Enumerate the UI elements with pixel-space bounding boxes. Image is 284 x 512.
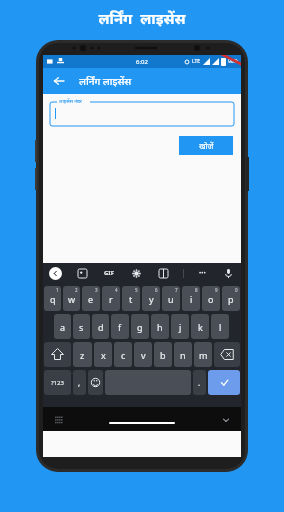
button[interactable]: z	[73, 342, 92, 367]
staticText: 5	[135, 287, 138, 293]
staticText: 2	[75, 287, 78, 293]
button[interactable]: Translate	[156, 266, 170, 280]
staticText: u	[168, 293, 174, 305]
staticText: q	[50, 293, 56, 305]
button[interactable]: e	[82, 286, 100, 311]
staticText: 0	[235, 287, 238, 293]
button[interactable]: n	[174, 342, 192, 367]
button[interactable]: b	[154, 342, 172, 367]
staticText: लर्निंग लाइसेंस	[98, 8, 186, 28]
button[interactable]: i	[182, 286, 200, 311]
staticText: x	[101, 349, 106, 361]
staticText: d	[98, 321, 104, 333]
staticText: r	[109, 293, 113, 305]
staticText: c	[121, 349, 126, 361]
button[interactable]: लाइसेंस नंबर	[50, 102, 234, 126]
staticText: z	[80, 349, 85, 361]
staticText: 1	[56, 287, 59, 293]
button[interactable]: f	[111, 314, 129, 339]
staticText: y	[149, 293, 154, 305]
button[interactable]: o	[202, 286, 220, 311]
button[interactable]: a	[54, 314, 71, 339]
button[interactable]: Stickers	[75, 266, 89, 280]
button[interactable]: j	[171, 314, 189, 339]
button[interactable]: d	[92, 314, 109, 339]
staticText: g	[137, 321, 143, 333]
button[interactable]: Voice input	[221, 266, 235, 280]
staticText: ,	[78, 377, 81, 388]
button[interactable]: l	[211, 314, 229, 339]
button[interactable]: More	[197, 267, 208, 279]
button[interactable]: r	[102, 286, 120, 311]
button[interactable]: Backspace	[214, 342, 240, 367]
staticText: n	[180, 349, 186, 361]
staticText: w	[68, 293, 76, 305]
staticText: 7	[175, 287, 178, 293]
button[interactable]: q	[44, 286, 61, 311]
staticText: i	[190, 293, 193, 305]
staticText: k	[198, 321, 203, 333]
button[interactable]: c	[114, 342, 132, 367]
staticText: GIF	[104, 269, 114, 277]
button[interactable]: s	[73, 314, 90, 339]
staticText: f	[118, 321, 122, 333]
button[interactable]: p	[222, 286, 240, 311]
staticText: .	[198, 377, 201, 388]
button[interactable]: Switch keyboard	[53, 414, 64, 425]
staticText: खोजें	[199, 140, 214, 151]
staticText: e	[88, 293, 94, 305]
button[interactable]: g	[131, 314, 149, 339]
button[interactable]: खोजें	[179, 136, 233, 155]
staticText: l	[219, 321, 222, 333]
button[interactable]: v	[134, 342, 152, 367]
button[interactable]: w	[63, 286, 80, 311]
button[interactable]: Hide keyboard	[220, 414, 231, 425]
staticText: 9	[215, 287, 218, 293]
staticText: •••	[199, 269, 206, 277]
button[interactable]: Shift	[44, 342, 71, 367]
staticText: 6:02	[136, 58, 148, 66]
staticText: s	[79, 321, 84, 333]
staticText: b	[160, 349, 166, 361]
button[interactable]: t	[122, 286, 140, 311]
staticText: लर्निंग लाइसेंस	[79, 74, 132, 88]
staticText: v	[141, 349, 146, 361]
staticText: t	[129, 293, 133, 305]
button[interactable]: ?123	[44, 370, 71, 395]
button[interactable]: .	[193, 370, 206, 395]
staticText: a	[60, 321, 66, 333]
staticText: 3	[95, 287, 98, 293]
staticText: 6	[155, 287, 158, 293]
button[interactable]: GIF	[102, 267, 116, 279]
button[interactable]: Close toolbar	[49, 267, 62, 280]
button[interactable]: x	[94, 342, 112, 367]
button[interactable]: k	[191, 314, 209, 339]
button[interactable]: u	[162, 286, 180, 311]
staticText: लाइसेंस नंबर	[59, 98, 82, 105]
staticText: 4	[115, 287, 118, 293]
staticText: j	[179, 321, 182, 333]
button[interactable]: Emoji	[88, 370, 103, 395]
staticText: m	[199, 349, 208, 361]
button[interactable]: h	[151, 314, 169, 339]
button[interactable]: Enter	[208, 370, 240, 395]
staticText: 8	[195, 287, 198, 293]
button[interactable]: y	[142, 286, 160, 311]
staticText: 96%	[228, 58, 238, 65]
staticText: ?123	[51, 379, 64, 387]
button[interactable]: Back	[49, 71, 69, 91]
button[interactable]: Settings	[129, 266, 143, 280]
button[interactable]: ,	[73, 370, 86, 395]
staticText: LTE	[192, 58, 201, 65]
button[interactable]: m	[194, 342, 212, 367]
staticText: o	[208, 293, 214, 305]
staticText: p	[228, 293, 234, 305]
staticText: h	[157, 321, 163, 333]
